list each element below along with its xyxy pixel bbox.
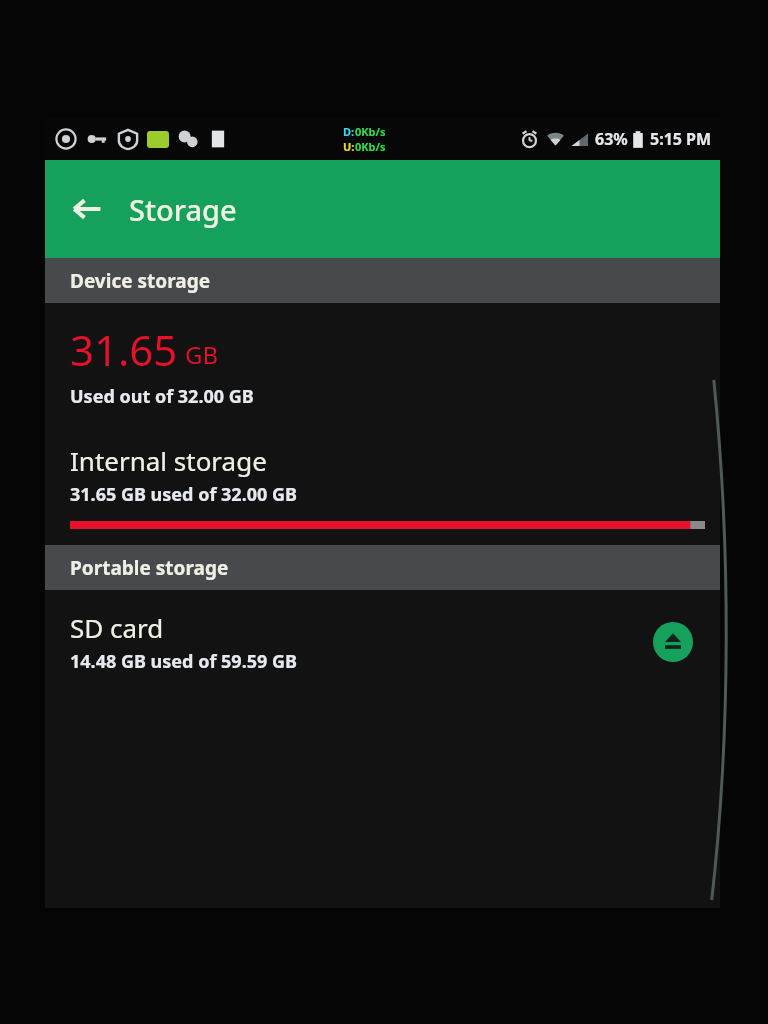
staticText: GB	[185, 338, 219, 371]
staticText: Storage	[129, 190, 237, 229]
staticText: 31.65 GB used of 32.00 GB	[70, 482, 297, 507]
staticText: SD card	[70, 610, 164, 645]
staticText: 0Kb/s	[355, 139, 386, 154]
staticText: D:	[343, 124, 355, 139]
staticText: Portable storage	[70, 555, 229, 581]
staticText: 31.65	[70, 321, 178, 378]
button[interactable]: Internal storage	[45, 409, 720, 529]
button[interactable]: Eject SD card	[650, 619, 696, 665]
staticText: 14.48 GB used of 59.59 GB	[70, 649, 297, 674]
button[interactable]: SD card	[45, 590, 720, 674]
staticText: U:	[343, 139, 355, 154]
staticText: Device storage	[70, 268, 210, 294]
staticText: Used out of 32.00 GB	[70, 384, 254, 409]
button[interactable]: Back	[59, 181, 115, 237]
staticText: 0Kb/s	[355, 124, 386, 139]
staticText: 5:15 PM	[650, 128, 712, 150]
staticText: 63%	[595, 128, 628, 150]
staticText: Internal storage	[70, 443, 267, 478]
